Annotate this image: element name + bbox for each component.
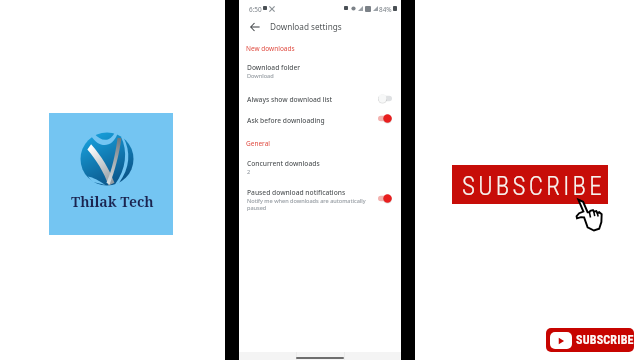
- staticText: Download settings: [270, 21, 342, 32]
- staticText: Ask before downloading: [247, 116, 325, 125]
- button[interactable]: Toggle: [375, 91, 395, 106]
- button[interactable]: Thilak Tech channel logo: [49, 113, 173, 235]
- staticText: SUBSCRIBE: [576, 333, 634, 347]
- button[interactable]: Always show download list: [239, 88, 401, 110]
- button[interactable]: Ask before downloading: [239, 109, 401, 131]
- button[interactable]: Download folder: [239, 58, 401, 81]
- button[interactable]: SUBSCRIBE: [452, 165, 608, 204]
- staticText: General: [246, 139, 270, 148]
- button[interactable]: Concurrent downloads: [239, 154, 401, 178]
- staticText: New downloads: [246, 44, 295, 53]
- staticText: 84%: [379, 5, 392, 14]
- staticText: Download: [247, 72, 274, 80]
- button[interactable]: Paused download notifications: [239, 183, 401, 215]
- button[interactable]: Back: [245, 17, 265, 37]
- staticText: Paused download notifications: [247, 188, 346, 197]
- button[interactable]: Toggle: [375, 111, 395, 126]
- staticText: Concurrent downloads: [247, 159, 320, 168]
- staticText: 2: [247, 168, 251, 176]
- staticText: Always show download list: [247, 95, 333, 104]
- staticText: Notify me when downloads are automatical…: [247, 197, 366, 205]
- staticText: Download folder: [247, 63, 301, 72]
- button[interactable]: SUBSCRIBE: [546, 328, 634, 352]
- button[interactable]: Toggle: [375, 191, 395, 206]
- staticText: paused: [247, 204, 267, 212]
- staticText: SUBSCRIBE: [462, 172, 606, 201]
- other: Home gesture bar: [296, 357, 344, 359]
- staticText: Thilak Tech: [71, 192, 154, 211]
- staticText: 6:50: [249, 5, 262, 14]
